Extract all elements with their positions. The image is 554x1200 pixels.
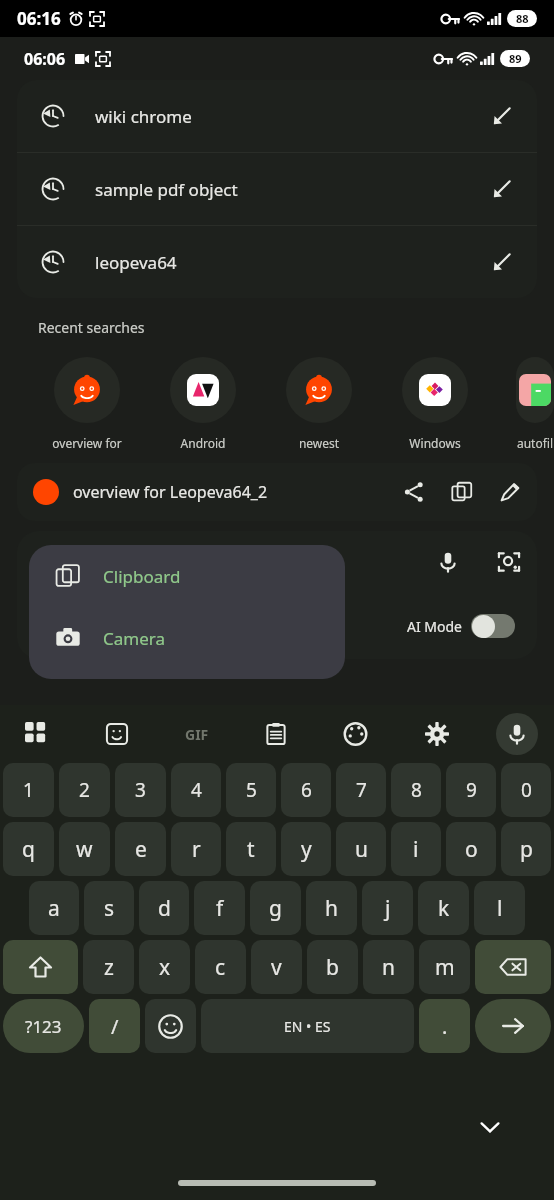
staticText: l [497,894,503,923]
staticText: AI Mode [407,617,463,636]
button[interactable]: 3 [115,763,166,817]
staticText: m [435,953,455,982]
button[interactable]: o [446,822,496,876]
button[interactable]: c [195,940,246,994]
staticText: 4 [191,777,202,803]
button[interactable]: wiki chrome [17,80,537,152]
button[interactable]: sample pdf object [17,153,537,225]
button[interactable]: Apps [16,713,58,755]
button[interactable]: Backspace [475,940,551,994]
other: Insert sample pdf object [491,178,513,200]
button[interactable]: 4 [171,763,221,817]
button[interactable]: t [226,822,276,876]
staticText: y [301,835,312,864]
button[interactable]: Themes [335,713,377,755]
other: Share [403,481,425,503]
button[interactable]: Voice input [496,713,538,755]
staticText: wiki chrome [95,105,192,128]
button[interactable]: AI Mode [407,614,515,638]
button[interactable]: ?123 [3,999,84,1053]
staticText: e [135,835,147,864]
button[interactable]: Clipboard [255,713,297,755]
button[interactable]: w [59,822,110,876]
button[interactable]: g [250,881,301,935]
staticText: u [355,835,368,864]
button[interactable]: newest sub... [284,357,354,451]
other: Copy [451,481,473,503]
staticText: Windows Ce... [400,435,470,451]
staticText: k [438,894,450,923]
button[interactable]: b [307,940,358,994]
staticText: . [442,1013,448,1040]
button[interactable]: Clipboard [29,545,345,607]
button[interactable]: Enter [475,999,551,1053]
staticText: w [76,835,93,864]
button[interactable]: / [89,999,140,1053]
button[interactable]: j [362,881,413,935]
button[interactable]: Camera [29,607,345,669]
staticText: g [269,894,282,923]
button[interactable]: u [336,822,386,876]
button[interactable]: 7 [336,763,386,817]
staticText: 2 [79,777,90,803]
button[interactable]: Settings [416,713,458,755]
button[interactable]: r [171,822,221,876]
staticText: autofill [516,435,554,451]
button[interactable]: v [251,940,302,994]
staticText: 8 [411,777,422,803]
button[interactable]: 0 [501,763,551,817]
button[interactable]: Android Polic... [168,357,238,451]
staticText: newest sub... [284,435,354,451]
staticText: z [104,953,114,982]
staticText: r [192,835,201,864]
button[interactable]: 6 [281,763,331,817]
button[interactable]: GIF [177,714,217,754]
button[interactable]: Stickers [96,713,138,755]
staticText: ?123 [25,1015,62,1038]
button[interactable]: m [419,940,470,994]
staticText: s [104,894,115,923]
button[interactable]: Windows Ce... [400,357,470,451]
button[interactable]: 5 [226,763,276,817]
button[interactable]: q [3,822,54,876]
button[interactable]: 8 [391,763,441,817]
button[interactable]: e [115,822,166,876]
button[interactable]: 2 [59,763,110,817]
button[interactable]: overview for ... [52,357,122,451]
staticText: o [465,835,478,864]
button[interactable]: leopeva64 [17,226,537,298]
staticText: Clipboard [103,565,181,588]
staticText: sample pdf object [95,178,238,201]
button[interactable]: y [281,822,331,876]
button[interactable]: 1 [3,763,54,817]
other: Add [39,614,63,638]
staticText: 5 [246,777,257,803]
button[interactable]: k [418,881,469,935]
button[interactable]: Shift [3,940,78,994]
button[interactable]: Hide keyboard [470,1107,510,1147]
button[interactable]: Emoji [145,999,196,1053]
staticText: EN • ES [284,1017,331,1036]
staticText: 7 [356,777,367,803]
button[interactable]: a [29,881,79,935]
button[interactable]: overview for Leopeva64_2 [17,463,537,521]
button[interactable]: n [363,940,414,994]
button[interactable]: . [419,999,470,1053]
button[interactable]: s [84,881,134,935]
staticText: f [216,894,224,923]
button[interactable]: x [139,940,190,994]
button[interactable]: p [501,822,551,876]
button[interactable]: d [139,881,189,935]
staticText: leopeva64 [95,251,177,274]
button[interactable]: i [391,822,441,876]
button[interactable]: h [306,881,357,935]
button[interactable]: 9 [446,763,496,817]
button[interactable]: f [194,881,245,935]
staticText: p [520,835,533,864]
button[interactable]: z [83,940,134,994]
button[interactable]: autofill [516,357,554,451]
button[interactable]: l [474,881,525,935]
staticText: 6 [301,777,312,803]
button[interactable]: EN • ES [201,999,414,1053]
staticText: Camera [103,627,165,650]
